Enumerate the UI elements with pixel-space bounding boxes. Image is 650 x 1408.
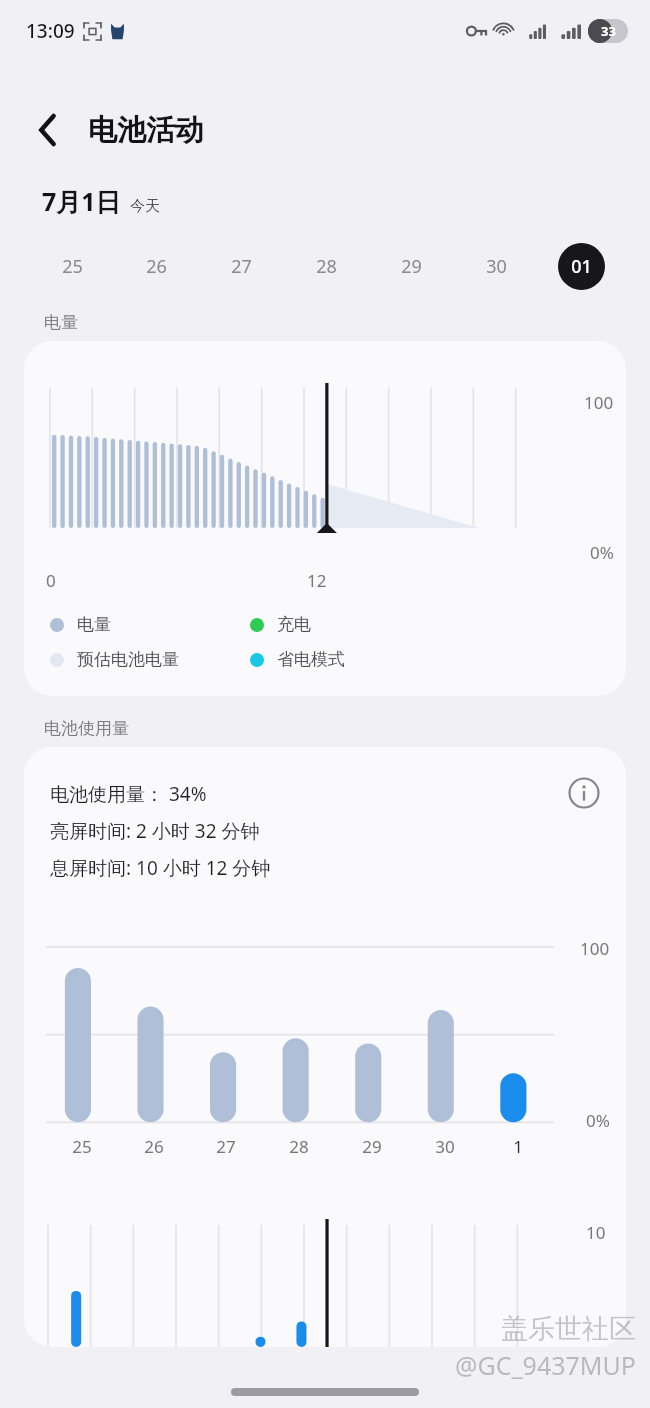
staticText: 30 [486,254,507,279]
staticText: @GC_9437MUP [455,1348,636,1382]
staticText: 电池使用量： 34% [50,781,207,807]
staticText: 预估电池电量 [77,649,179,670]
staticText: 28 [289,1135,309,1158]
staticText: 29 [362,1135,382,1158]
button[interactable]: 25 [30,240,114,292]
staticText: 充电 [277,614,311,635]
staticText: 0% [590,541,614,564]
staticText: 29 [401,254,422,279]
staticText: 27 [216,1135,236,1158]
staticText: 7月1日 [42,184,121,218]
staticText: 01 [571,254,592,279]
button[interactable]: 27 [199,240,284,292]
button[interactable]: 26 [114,240,199,292]
staticText: 26 [146,254,167,279]
staticText: 30 [435,1135,455,1158]
button[interactable]: 01 [539,240,624,292]
staticText: 电量 [77,614,111,635]
staticText: 13:09 [26,18,75,44]
button[interactable]: 电池使用量： 34% [24,747,626,1347]
staticText: 25 [62,254,83,279]
button[interactable]: 100 [24,341,626,696]
staticText: 28 [316,254,337,279]
staticText: 电池使用量 [44,718,129,739]
staticText: 10 [586,1221,606,1244]
button[interactable]: Info [562,771,606,815]
staticText: 26 [144,1135,164,1158]
staticText: 0 [46,569,56,592]
button[interactable]: Back [24,106,72,154]
staticText: 电量 [44,312,78,333]
staticText: 100 [584,391,614,414]
staticText: 亮屏时间: 2 小时 32 分钟 [50,818,260,844]
button[interactable]: 28 [284,240,369,292]
button[interactable]: 29 [369,240,454,292]
staticText: 12 [307,569,327,592]
staticText: 电池活动 [88,112,204,149]
staticText: 27 [231,254,252,279]
staticText: 盖乐世社区 [501,1312,636,1346]
staticText: 今天 [130,197,160,216]
staticText: 1 [513,1135,523,1158]
button[interactable]: 30 [454,240,539,292]
staticText: 0% [586,1109,610,1132]
staticText: 省电模式 [277,649,345,670]
staticText: 100 [580,937,610,960]
staticText: 33 [601,22,616,40]
staticText: 25 [72,1135,92,1158]
staticText: 息屏时间: 10 小时 12 分钟 [50,855,271,881]
